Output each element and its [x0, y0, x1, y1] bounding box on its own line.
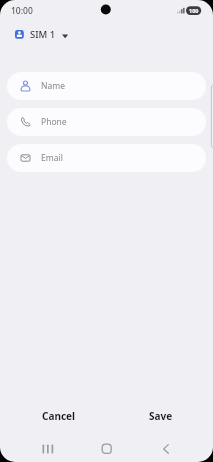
staticText: Phone: [41, 116, 67, 128]
staticText: Save: [149, 409, 173, 423]
staticText: Email: [41, 152, 63, 164]
button[interactable]: [95, 438, 119, 460]
button[interactable]: [36, 438, 60, 460]
button[interactable]: [154, 438, 178, 460]
staticText: SIM 1: [30, 28, 56, 41]
staticText: 100: [189, 7, 199, 14]
staticText: 10:00: [11, 5, 33, 17]
button[interactable]: Save: [130, 404, 192, 428]
button[interactable]: Phone: [7, 108, 206, 136]
button[interactable]: Name: [7, 72, 206, 100]
staticText: Cancel: [42, 409, 76, 423]
staticText: Name: [41, 80, 65, 92]
button[interactable]: Cancel: [28, 404, 90, 428]
button[interactable]: SIM 1: [10, 27, 74, 45]
button[interactable]: Email: [7, 144, 206, 172]
